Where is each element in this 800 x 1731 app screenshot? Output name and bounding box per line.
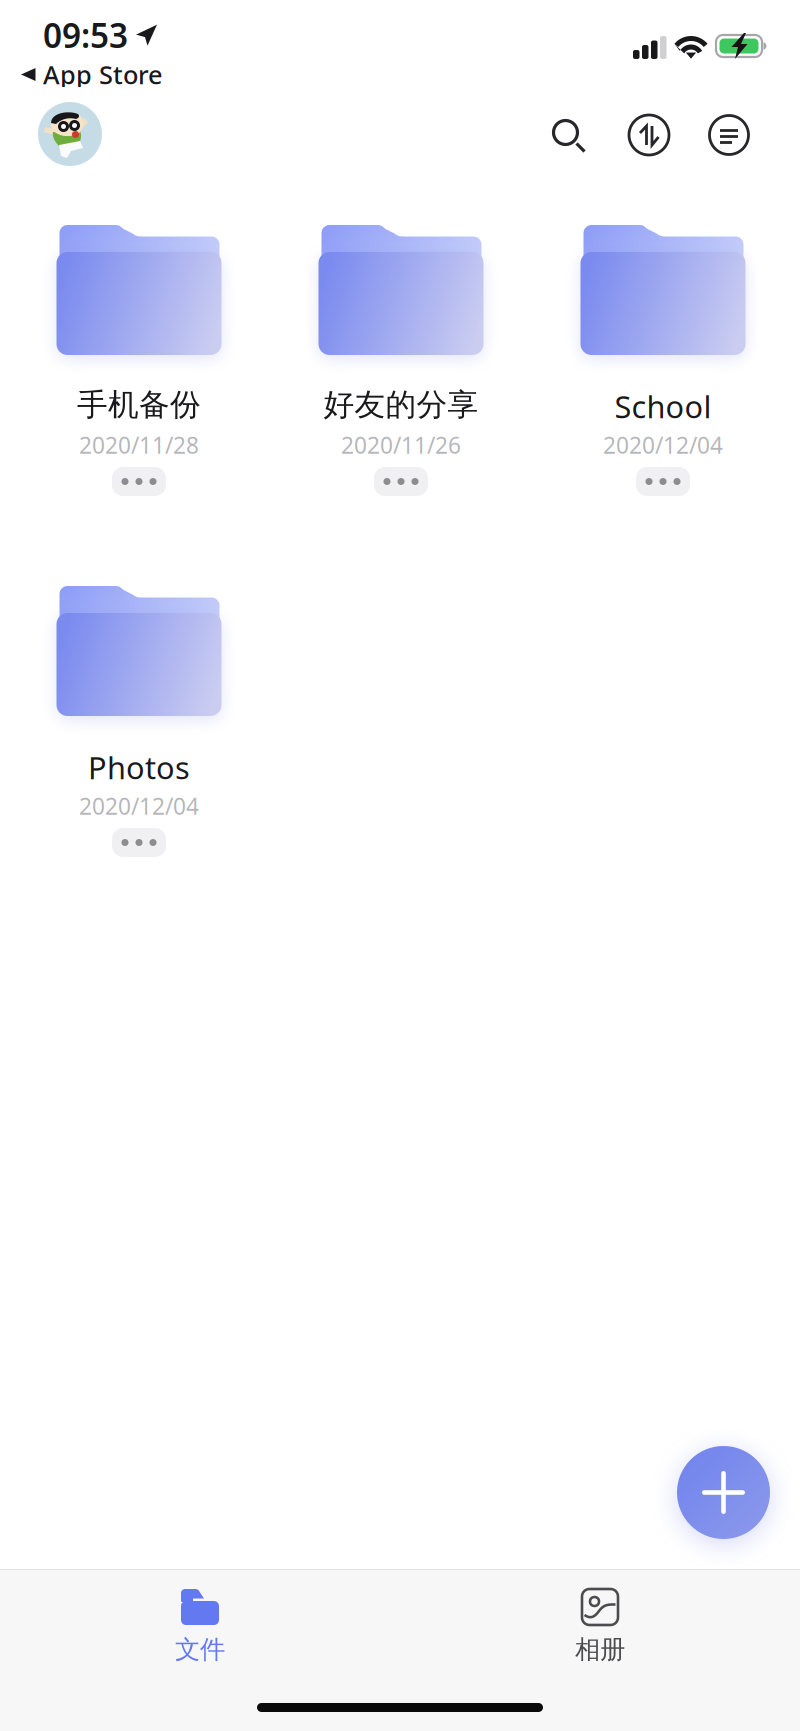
button[interactable]: Photos — [8, 586, 270, 868]
button[interactable]: Menu — [701, 107, 757, 163]
button[interactable]: Back to App Store — [0, 62, 800, 87]
button[interactable]: Profile — [38, 102, 102, 166]
staticText: 文件 — [175, 1634, 225, 1665]
staticText: 2020/11/26 — [341, 430, 461, 460]
button[interactable]: Transfers — [621, 107, 677, 163]
staticText: 2020/12/04 — [603, 430, 723, 460]
staticText: 2020/12/04 — [79, 791, 199, 821]
staticText: School — [614, 386, 711, 427]
staticText: App Store — [43, 58, 163, 91]
button[interactable]: 手机备份 — [8, 225, 270, 507]
staticText: Photos — [88, 747, 190, 788]
button[interactable]: 相册 — [400, 1570, 800, 1731]
button[interactable]: 文件 — [0, 1570, 400, 1731]
staticText: 相册 — [575, 1634, 625, 1665]
staticText: 手机备份 — [77, 386, 201, 424]
staticText: 2020/11/28 — [79, 430, 199, 460]
button[interactable]: 好友的分享 — [270, 225, 532, 507]
button[interactable]: School — [532, 225, 794, 507]
staticText: 好友的分享 — [323, 386, 478, 424]
staticText: 09:53 — [43, 13, 128, 57]
button[interactable]: Search — [542, 109, 598, 165]
button[interactable]: Add — [677, 1446, 770, 1539]
